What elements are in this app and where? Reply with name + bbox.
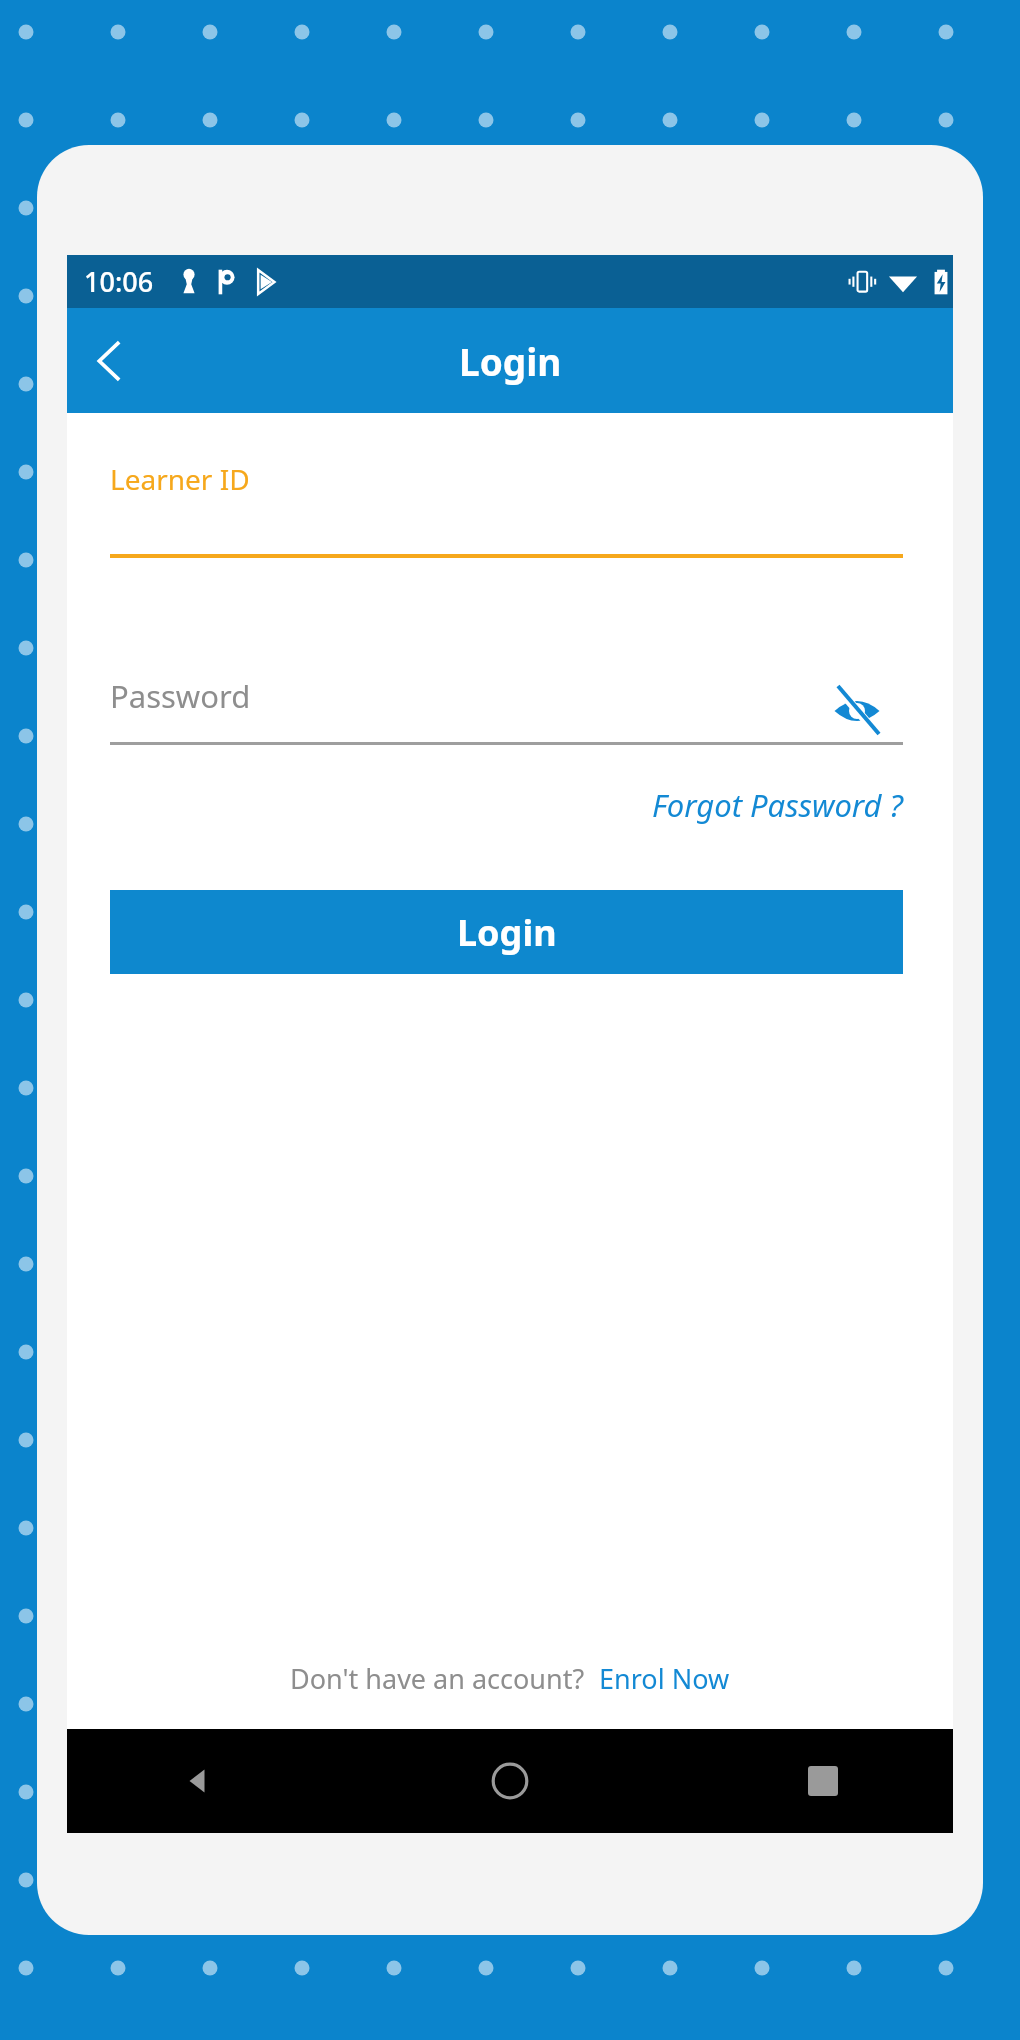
button[interactable]: Home xyxy=(480,1751,540,1811)
staticText: Login xyxy=(457,908,557,957)
staticText: Login xyxy=(459,336,562,386)
button[interactable]: Recent apps xyxy=(793,1751,853,1811)
button[interactable]: Login xyxy=(110,890,903,974)
staticText: Don't have an account? xyxy=(290,1660,585,1697)
staticText: 10:06 xyxy=(84,263,154,300)
button[interactable]: Enrol Now xyxy=(585,1660,730,1697)
button[interactable]: Forgot Password ? xyxy=(607,775,903,835)
button[interactable]: Back xyxy=(67,319,151,403)
button[interactable]: Show password xyxy=(825,679,889,743)
staticText: Password xyxy=(110,675,251,717)
staticText: Learner ID xyxy=(110,460,250,498)
staticText: Enrol Now xyxy=(585,1660,730,1697)
button[interactable]: Learner ID xyxy=(110,460,903,570)
staticText: Forgot Password ? xyxy=(652,784,903,826)
button[interactable]: Back xyxy=(167,1751,227,1811)
